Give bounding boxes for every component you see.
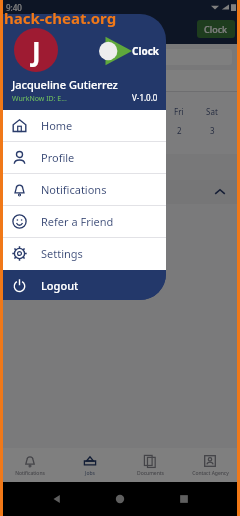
button[interactable]: Notifications (0, 174, 166, 205)
staticText: Settings (41, 246, 83, 261)
staticText: Notifications (15, 470, 45, 477)
staticText: Jacqueline Gutierrez (12, 77, 118, 92)
button[interactable]: Home (113, 492, 127, 506)
staticText: Refer a Friend (41, 214, 114, 229)
staticText: Clock (204, 23, 228, 35)
button[interactable]: Recents (177, 492, 191, 506)
staticText: Wed (98, 106, 115, 117)
staticText: Opportunities (91, 75, 150, 87)
staticText: 9:40 (6, 2, 22, 13)
staticText: Jobs (85, 470, 95, 477)
staticText: WurkNow ID: E... (12, 94, 67, 104)
button[interactable]: Home (0, 110, 166, 141)
staticText: 2 (177, 125, 182, 136)
button[interactable]: Collapse (212, 184, 228, 200)
button[interactable]: Contact Agency (180, 448, 240, 482)
staticText: Home (41, 118, 73, 133)
button[interactable]: Jobs (60, 448, 120, 482)
staticText: 29 (64, 125, 74, 136)
staticText: Profile (41, 150, 75, 165)
button[interactable]: Clock (197, 20, 235, 38)
staticText: J (32, 33, 41, 68)
staticText: Documents (137, 470, 164, 477)
button[interactable]: Notifications (0, 448, 60, 482)
button[interactable]: Monthly (89, 157, 152, 177)
button[interactable]: Back (50, 492, 64, 506)
button[interactable]: Logout (0, 270, 166, 300)
button[interactable]: Settings (0, 238, 166, 269)
staticText: Notifications (41, 182, 107, 197)
staticText: 28 (26, 125, 36, 136)
button[interactable]: J (14, 28, 58, 72)
staticText: Clock (132, 44, 160, 58)
staticText: Search (25, 52, 51, 63)
staticText: Contact Agency (192, 470, 229, 477)
button[interactable]: Documents (120, 448, 180, 482)
staticText: V-1.0.0 (132, 92, 158, 103)
staticText: Fri (174, 106, 184, 117)
staticText: Thu (137, 106, 152, 117)
staticText: hack-cheat.org (4, 8, 117, 28)
staticText: Logout (41, 278, 79, 293)
button[interactable]: Refer a Friend (0, 206, 166, 237)
staticText: 3 (210, 125, 215, 136)
button[interactable]: Profile (0, 142, 166, 173)
staticText: Mon (22, 106, 40, 117)
staticText: Sat (206, 106, 218, 117)
staticText: Tue (62, 106, 76, 117)
button[interactable]: Search (9, 49, 232, 65)
